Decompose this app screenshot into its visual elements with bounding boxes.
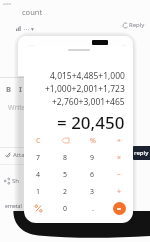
- button[interactable]: reply: [133, 146, 150, 160]
- staticText: ▬▪▪: [3, 2, 12, 6]
- button[interactable]: 7: [24, 149, 52, 166]
- staticText: 8: [63, 153, 68, 163]
- staticText: 1: [36, 187, 41, 197]
- staticText: 6: [90, 170, 95, 180]
- button[interactable]: 3: [79, 183, 106, 200]
- staticText: +2,760+3,001+465: [52, 96, 125, 108]
- button[interactable]: 9: [79, 149, 106, 166]
- button[interactable]: ×: [106, 149, 133, 166]
- button[interactable]: 2: [52, 183, 79, 200]
- staticText: = 20,450: [57, 111, 125, 134]
- staticText: ernetal: [5, 203, 22, 210]
- staticText: 3: [90, 187, 95, 197]
- staticText: C: [36, 136, 41, 146]
- staticText: 9: [90, 153, 95, 163]
- button[interactable]: 0: [52, 200, 79, 217]
- button[interactable]: 6: [79, 166, 106, 183]
- staticText: ⋯ ▾: [24, 25, 34, 32]
- staticText: +1,000+2,001+1,723: [45, 83, 125, 95]
- staticText: +: [117, 187, 122, 197]
- staticText: %: [90, 136, 96, 146]
- staticText: −: [117, 170, 122, 180]
- staticText: 4: [36, 170, 41, 180]
- button[interactable]: +: [106, 183, 133, 200]
- button[interactable]: 5: [52, 166, 79, 183]
- button[interactable]: [52, 132, 79, 149]
- staticText: 0: [63, 204, 68, 214]
- button[interactable]: −: [106, 166, 133, 183]
- staticText: .: [92, 204, 94, 214]
- staticText: Sh: [12, 177, 20, 185]
- button[interactable]: 1: [24, 183, 52, 200]
- button[interactable]: .: [79, 200, 106, 217]
- button[interactable]: =: [106, 200, 133, 217]
- staticText: 7: [36, 153, 41, 163]
- staticText: 2: [63, 187, 68, 197]
- staticText: count: [22, 7, 43, 17]
- staticText: reply: [134, 149, 149, 157]
- button[interactable]: %: [79, 132, 106, 149]
- button[interactable]: ÷: [106, 132, 133, 149]
- staticText: Atta: [13, 151, 25, 159]
- staticText: 4,015+4,485+1,000: [50, 70, 125, 82]
- staticText: B: [6, 84, 11, 94]
- button[interactable]: Reply: [123, 21, 145, 29]
- button[interactable]: C: [24, 132, 52, 149]
- button[interactable]: 8: [52, 149, 79, 166]
- staticText: ×: [117, 153, 122, 163]
- staticText: =: [117, 204, 122, 214]
- staticText: Reply: [129, 21, 145, 29]
- staticText: ÷: [117, 136, 122, 146]
- button[interactable]: [24, 200, 52, 217]
- staticText: I: [19, 84, 22, 94]
- staticText: 5: [63, 170, 68, 180]
- staticText: Write: [8, 103, 26, 113]
- button[interactable]: 4: [24, 166, 52, 183]
